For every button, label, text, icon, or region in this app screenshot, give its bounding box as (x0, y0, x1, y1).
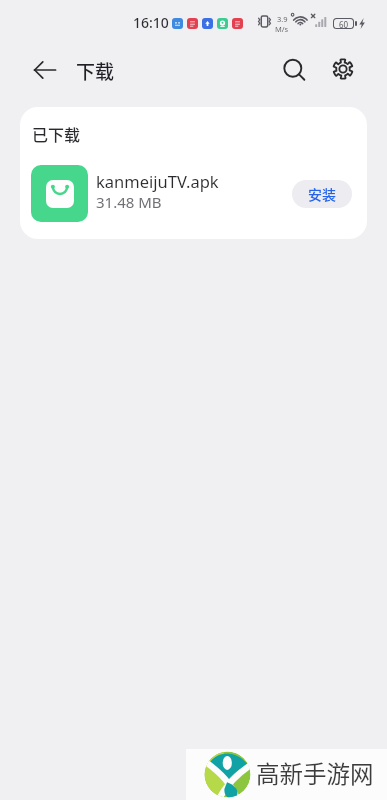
button[interactable]: Settings (325, 51, 361, 87)
staticText: 下载 (76, 57, 115, 85)
staticText: kanmeijuTV.apk (96, 170, 219, 192)
staticText: 高新手游网 (256, 756, 374, 790)
staticText: M/s (275, 24, 289, 34)
button[interactable]: Back (26, 53, 58, 85)
button[interactable]: 安装 (292, 180, 352, 208)
staticText: 安装 (308, 184, 336, 204)
staticText: 16:10 (133, 13, 169, 32)
button[interactable]: Search (276, 51, 312, 87)
staticText: 3.9 (277, 14, 288, 24)
staticText: 已下载 (32, 122, 81, 145)
button[interactable]: kanmeijuTV.apk (20, 165, 367, 222)
staticText: 60 (339, 19, 349, 28)
staticText: 31.48 MB (96, 192, 162, 212)
